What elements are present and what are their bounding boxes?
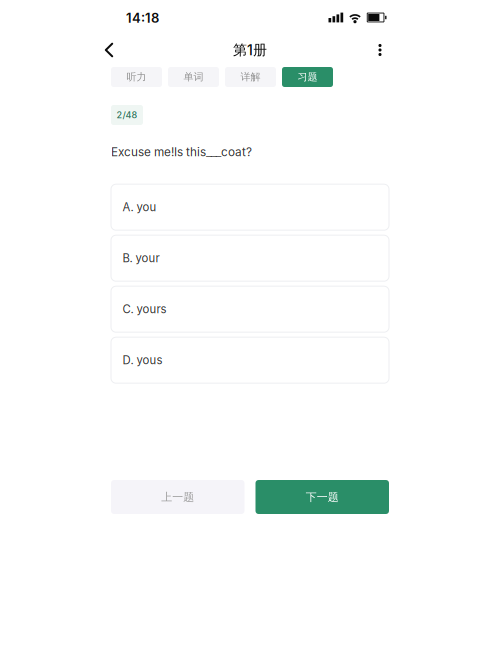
button[interactable]: More options [363,33,397,67]
button[interactable]: B. your [111,235,389,281]
button[interactable]: 详解 [225,67,276,87]
button[interactable]: 单词 [168,67,219,87]
staticText: C. yours [122,302,166,316]
staticText: 下一题 [306,490,339,504]
staticText: A. you [122,200,156,214]
staticText: 第1册 [233,41,267,59]
button[interactable]: D. yous [111,337,389,383]
staticText: 习题 [297,71,317,83]
staticText: D. yous [122,353,162,367]
staticText: 听力 [126,71,146,83]
staticText: 单词 [183,71,203,83]
staticText: 上一题 [161,490,194,504]
button[interactable]: 习题 [282,67,333,87]
button[interactable]: Back [92,33,126,67]
button[interactable]: 听力 [111,67,162,87]
staticText: 2/48 [116,109,137,120]
button[interactable]: C. yours [111,286,389,332]
staticText: 详解 [240,71,260,83]
staticText: 14:18 [126,10,159,26]
button[interactable]: A. you [111,184,389,230]
staticText: Excuse me!Is this___coat? [111,145,252,159]
button[interactable]: 下一题 [255,480,389,514]
button[interactable]: 上一题 [111,480,244,514]
staticText: B. your [122,251,159,265]
